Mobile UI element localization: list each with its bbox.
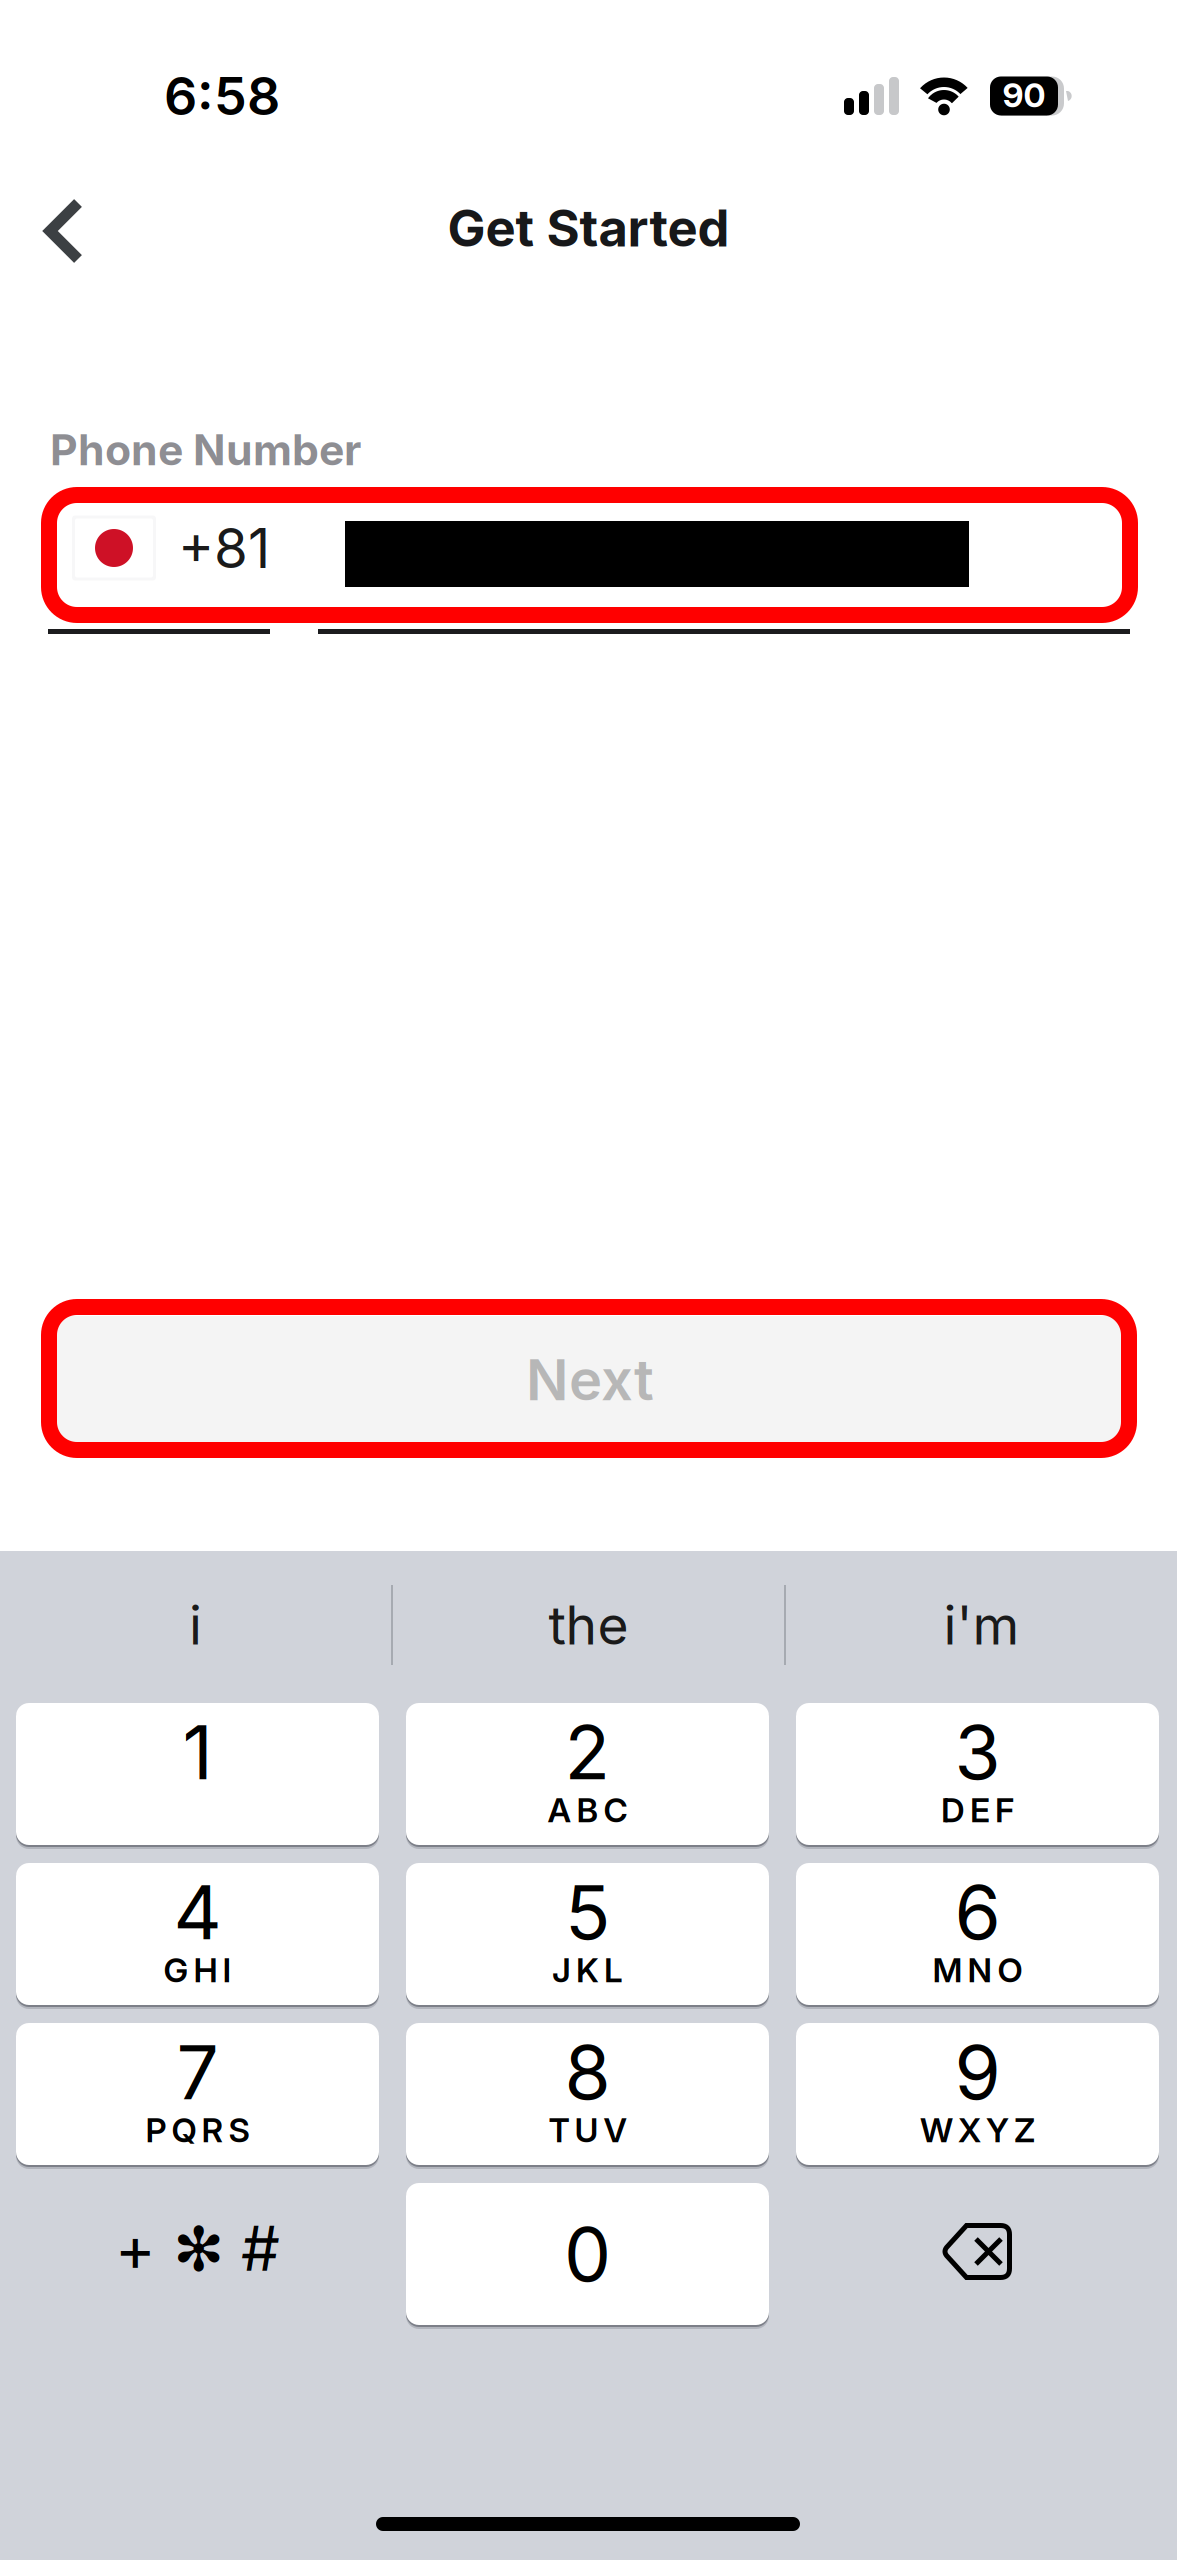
staticText: 7 [176,2027,218,2117]
button[interactable]: 0 [406,2183,769,2328]
staticText: 6:58 [164,64,280,127]
staticText: i'm [943,1593,1019,1657]
button[interactable]: 9 [796,2023,1159,2168]
button[interactable]: i [0,1551,391,1699]
button[interactable]: 8 [406,2023,769,2168]
staticText: 1 [182,1707,212,1797]
staticText: the [548,1593,628,1657]
button[interactable]: 1 [16,1703,379,1848]
staticText: 90 [1002,75,1045,115]
button[interactable]: the [393,1551,784,1699]
staticText: + ✻ # [115,2211,280,2286]
button[interactable]: 2 [406,1703,769,1848]
staticText: 8 [564,2027,610,2117]
staticText: 0 [564,2209,611,2299]
staticText: 9 [954,2027,1000,2117]
staticText: DEF [941,1790,1014,1830]
staticText: 5 [565,1867,610,1957]
button[interactable]: 7 [16,2023,379,2168]
staticText: TUV [548,2110,626,2150]
button[interactable]: Back [22,176,106,286]
button[interactable]: Next [56,1316,1124,1444]
staticText: i [189,1593,202,1657]
button[interactable]: 4 [16,1863,379,2008]
staticText: JKL [552,1950,623,1990]
staticText: 4 [173,1867,221,1957]
button[interactable]: i'm [786,1551,1177,1699]
button[interactable]: Delete [796,2184,1159,2326]
staticText: Next [526,1346,654,1414]
button[interactable]: 5 [406,1863,769,2008]
staticText: 3 [954,1707,1000,1797]
staticText: Get Started [447,197,729,259]
staticText: ABC [547,1790,627,1830]
staticText: 6 [954,1867,1000,1957]
staticText: MNO [932,1950,1022,1990]
staticText: 2 [564,1707,610,1797]
button[interactable]: 3 [796,1703,1159,1848]
staticText: PQRS [145,2110,249,2150]
button[interactable]: 6 [796,1863,1159,2008]
button[interactable]: Country code +81 [72,492,302,604]
button[interactable]: plus star pound [16,2184,379,2326]
staticText: GHI [163,1950,231,1990]
staticText: +81 [178,515,270,581]
staticText: WXYZ [920,2110,1035,2150]
staticText: Phone Number [50,424,361,476]
